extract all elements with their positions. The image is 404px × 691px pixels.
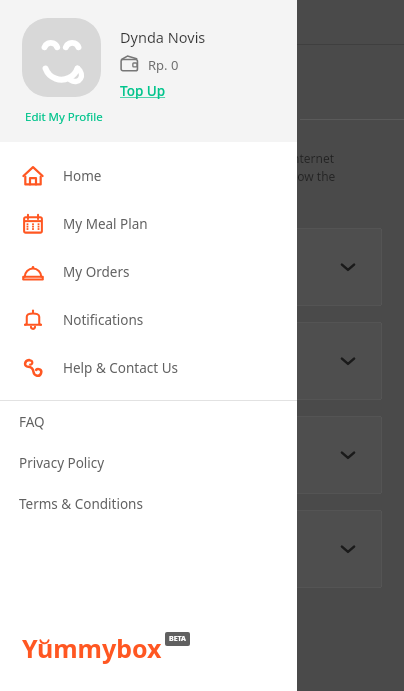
button[interactable]: Expand xyxy=(22,416,382,494)
staticText: Top Up xyxy=(120,82,166,100)
staticText: Dynda Novis xyxy=(120,27,206,47)
button[interactable]: Privacy Policy xyxy=(0,442,297,483)
other: Expand xyxy=(340,259,356,275)
staticText: Help & Contact Us xyxy=(63,359,178,377)
staticText: and follow the xyxy=(255,168,336,184)
button[interactable]: Profile picture xyxy=(22,18,101,97)
staticText: Terms & Conditions xyxy=(19,495,143,513)
staticText: Edit My Profile xyxy=(25,109,103,125)
staticText: BETA xyxy=(169,634,186,644)
button[interactable]: Top Up xyxy=(119,81,167,101)
button[interactable]: Notifications xyxy=(0,296,297,344)
staticText: My Meal Plan xyxy=(63,215,148,233)
button[interactable]: Expand xyxy=(22,322,382,400)
staticText: Rp. 0 xyxy=(148,56,179,74)
button[interactable]: Help & Contact Us xyxy=(0,344,297,392)
button[interactable]: Expand xyxy=(22,228,382,306)
staticText: Yummybox xyxy=(22,631,162,665)
button[interactable]: My Orders xyxy=(0,248,297,296)
staticText: Notifications xyxy=(63,311,144,329)
button[interactable]: Edit My Profile xyxy=(24,108,104,126)
button[interactable]: My Meal Plan xyxy=(0,200,297,248)
other: Expand xyxy=(340,353,356,369)
button[interactable]: Home xyxy=(0,152,297,200)
other: Expand xyxy=(340,541,356,557)
staticText: Mobile/Internet xyxy=(245,150,335,166)
staticText: FAQ xyxy=(19,413,45,431)
staticText: Privacy Policy xyxy=(19,454,105,472)
button[interactable]: Terms & Conditions xyxy=(0,483,297,524)
staticText: Home xyxy=(63,167,102,185)
other: Expand xyxy=(340,447,356,463)
button[interactable]: FAQ xyxy=(0,401,297,442)
staticText: My Orders xyxy=(63,263,130,281)
button[interactable]: Expand xyxy=(22,510,382,588)
